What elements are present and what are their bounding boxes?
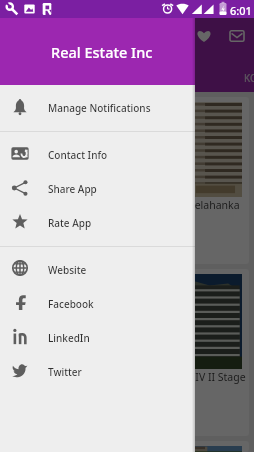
- staticText: Purva Skywood Luxury Apartments, Yelahan…: [11, 198, 240, 212]
- staticText: Manage Notifications: [48, 101, 151, 115]
- staticText: Facebook: [48, 297, 94, 311]
- button[interactable]: Contact Info: [0, 138, 195, 172]
- staticText: Prestige Royale Gardens, HSR Layout IV I…: [11, 370, 246, 384]
- staticText: Real Estate Inc: [51, 42, 153, 62]
- staticText: LinkedIn: [48, 331, 90, 345]
- button[interactable]: Rate App: [0, 206, 195, 240]
- button[interactable]: Share App: [0, 172, 195, 206]
- staticText: Rate App: [48, 216, 92, 230]
- staticText: Website: [48, 263, 87, 277]
- staticText: KORAMANGALA: [244, 71, 254, 85]
- button[interactable]: Facebook: [0, 287, 195, 321]
- staticText: 6:01: [230, 3, 252, 18]
- button[interactable]: Purva Skywood Luxury Apartments, Yelahan…: [6, 97, 249, 264]
- button[interactable]: Website: [0, 253, 195, 287]
- staticText: Contact Info: [48, 148, 108, 162]
- button[interactable]: Prestige Royale Gardens, HSR Layout IV I…: [6, 269, 249, 436]
- staticText: Share App: [48, 182, 97, 196]
- button[interactable]: LinkedIn: [0, 321, 195, 355]
- button[interactable]: Twitter: [0, 355, 195, 389]
- button[interactable]: Messages: [224, 23, 250, 49]
- button[interactable]: Sobha Dream Acres, Panathur Main Road: [6, 441, 249, 452]
- button[interactable]: Favorites: [191, 23, 217, 49]
- button[interactable]: Manage Notifications: [0, 91, 195, 125]
- staticText: Twitter: [48, 365, 82, 379]
